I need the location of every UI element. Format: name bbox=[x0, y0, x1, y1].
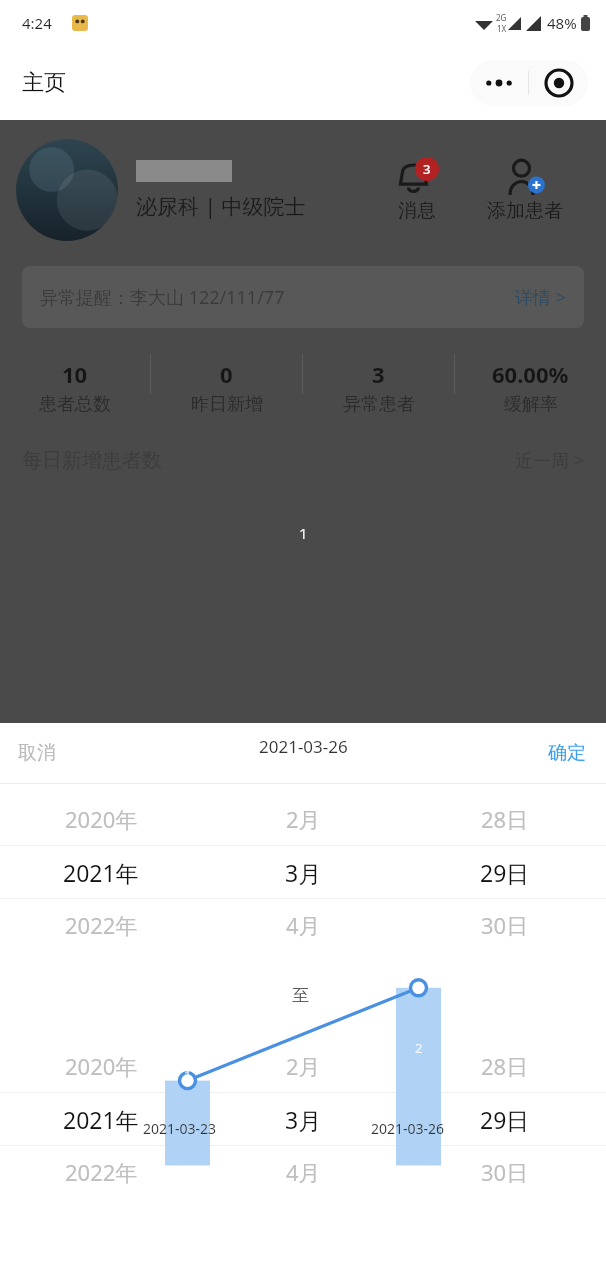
button[interactable]: 近一周 > bbox=[515, 448, 584, 473]
staticText: 10 bbox=[62, 359, 88, 389]
button[interactable]: 0 bbox=[151, 354, 302, 420]
staticText: 1 bbox=[184, 1066, 192, 1084]
button[interactable]: 确定 bbox=[548, 741, 586, 765]
button[interactable]: 28日 bbox=[404, 1040, 606, 1092]
staticText: 每日新增患者数 bbox=[22, 448, 162, 473]
staticText: 0 bbox=[220, 359, 233, 389]
staticText: 2021-03-26 bbox=[259, 735, 348, 758]
staticText: 30日 bbox=[481, 1157, 529, 1187]
staticText: 患者总数 bbox=[39, 393, 111, 416]
staticText: 2022年 bbox=[65, 910, 138, 940]
staticText: 确定 bbox=[548, 741, 586, 765]
staticText: 3月 bbox=[285, 1104, 322, 1135]
staticText: 详情 > bbox=[515, 285, 566, 310]
staticText: 昨日新增 bbox=[191, 393, 263, 416]
staticText: 添加患者 bbox=[487, 199, 563, 223]
button[interactable]: 异常提醒：李大山 122/111/77 bbox=[40, 266, 566, 328]
staticText: 60.00% bbox=[492, 359, 569, 389]
button[interactable]: 29日 bbox=[404, 1093, 606, 1145]
button[interactable]: 3 bbox=[374, 157, 460, 223]
staticText: 28日 bbox=[481, 804, 529, 834]
staticText: 取消 bbox=[18, 741, 56, 765]
staticText: 2022年 bbox=[65, 1157, 138, 1187]
button[interactable] bbox=[16, 139, 118, 241]
staticText: 2021年 bbox=[63, 857, 139, 888]
staticText: 异常患者 bbox=[343, 393, 415, 416]
staticText: 异常提醒：李大山 122/111/77 bbox=[40, 285, 285, 310]
staticText: 29日 bbox=[480, 857, 530, 888]
staticText: 泌尿科 | 中级院士 bbox=[136, 192, 306, 221]
staticText: 4:24 bbox=[22, 13, 52, 33]
button[interactable]: 30日 bbox=[404, 899, 606, 951]
button[interactable]: 28日 bbox=[404, 793, 606, 845]
staticText: 2020年 bbox=[65, 804, 138, 834]
staticText: 3 bbox=[372, 359, 385, 389]
button[interactable]: 3 bbox=[303, 354, 454, 420]
staticText: 2020年 bbox=[65, 1051, 138, 1081]
button[interactable]: 60.00% bbox=[455, 354, 606, 420]
staticText: 48% bbox=[547, 13, 577, 33]
staticText: 2月 bbox=[286, 1051, 321, 1081]
button[interactable]: 4月 bbox=[202, 1146, 404, 1198]
button[interactable]: 4月 bbox=[202, 899, 404, 951]
staticText: 4月 bbox=[286, 910, 321, 940]
button[interactable]: 30日 bbox=[404, 1146, 606, 1198]
button[interactable]: 10 bbox=[0, 354, 150, 420]
button[interactable]: Close bbox=[529, 60, 588, 106]
button[interactable]: 2020年 bbox=[0, 1040, 202, 1092]
button[interactable]: 2021年 bbox=[0, 1093, 202, 1145]
staticText: 主页 bbox=[22, 69, 66, 97]
button[interactable]: 取消 bbox=[18, 741, 56, 765]
staticText: 3月 bbox=[285, 857, 322, 888]
staticText: 至 bbox=[292, 985, 309, 1006]
button[interactable]: 2月 bbox=[202, 1040, 404, 1092]
button[interactable]: 2020年 bbox=[0, 793, 202, 845]
staticText: 28日 bbox=[481, 1051, 529, 1081]
button[interactable]: 2月 bbox=[202, 793, 404, 845]
staticText: 2G bbox=[496, 12, 507, 23]
staticText: 2021-03-26 bbox=[371, 1119, 445, 1138]
staticText: 缓解率 bbox=[504, 393, 558, 416]
staticText: 2021年 bbox=[63, 1104, 139, 1135]
staticText: 1 bbox=[299, 523, 308, 543]
staticText: 3 bbox=[423, 160, 431, 178]
button[interactable]: 2021年 bbox=[0, 846, 202, 898]
button[interactable]: 添加患者 bbox=[460, 157, 590, 223]
staticText: 30日 bbox=[481, 910, 529, 940]
button[interactable]: 29日 bbox=[404, 846, 606, 898]
button[interactable]: 2022年 bbox=[0, 899, 202, 951]
button[interactable]: 3月 bbox=[202, 846, 404, 898]
staticText: 2月 bbox=[286, 804, 321, 834]
button[interactable]: 2022年 bbox=[0, 1146, 202, 1198]
staticText: 消息 bbox=[398, 199, 436, 223]
staticText: 29日 bbox=[480, 1104, 530, 1135]
staticText: 近一周 > bbox=[515, 448, 584, 473]
button[interactable]: More bbox=[470, 60, 588, 106]
staticText: 1X bbox=[497, 23, 507, 34]
staticText: 4月 bbox=[286, 1157, 321, 1187]
staticText: 2 bbox=[415, 1039, 423, 1057]
button[interactable]: 3月 bbox=[202, 1093, 404, 1145]
staticText: 2021-03-23 bbox=[143, 1119, 217, 1138]
button[interactable]: More bbox=[470, 60, 528, 106]
